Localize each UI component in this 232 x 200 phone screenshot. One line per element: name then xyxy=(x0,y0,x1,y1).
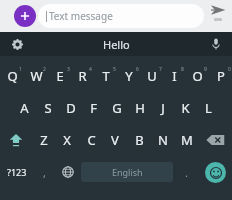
button[interactable]: L xyxy=(197,92,220,124)
button[interactable]: R xyxy=(71,60,94,92)
staticText: Z xyxy=(40,131,48,149)
staticText: C xyxy=(87,131,96,149)
staticText: M xyxy=(181,131,193,149)
button[interactable]: D xyxy=(59,92,82,124)
button[interactable]: T xyxy=(94,60,117,92)
button[interactable]: Hello xyxy=(0,32,232,56)
staticText: T xyxy=(102,67,110,85)
button[interactable]: Send SMS xyxy=(206,3,230,29)
staticText: W xyxy=(30,67,43,85)
staticText: 6 xyxy=(136,66,139,73)
button[interactable]: Z xyxy=(32,124,55,156)
staticText: Hello xyxy=(103,37,130,52)
staticText: H xyxy=(135,99,145,117)
button[interactable]: English xyxy=(81,162,173,182)
button[interactable]: U xyxy=(140,60,163,92)
staticText: A xyxy=(20,99,29,117)
button[interactable]: O xyxy=(186,60,209,92)
staticText: D xyxy=(66,99,76,117)
staticText: I xyxy=(172,67,177,85)
staticText: S xyxy=(44,99,52,117)
staticText: 8 xyxy=(181,66,184,73)
staticText: B xyxy=(135,131,144,149)
staticText: 0 xyxy=(228,66,231,73)
staticText: 9 xyxy=(204,66,207,73)
button[interactable]: Emoji xyxy=(205,162,226,183)
button[interactable]: P xyxy=(209,60,232,92)
button[interactable]: Settings xyxy=(6,32,28,56)
button[interactable]: Add attachment xyxy=(14,5,36,27)
button[interactable]: Backspace xyxy=(199,124,232,156)
button[interactable]: G xyxy=(105,92,128,124)
staticText: 3 xyxy=(67,66,70,73)
staticText: U xyxy=(147,67,157,85)
button[interactable]: K xyxy=(174,92,197,124)
button[interactable]: , xyxy=(33,156,56,188)
button[interactable]: H xyxy=(128,92,151,124)
staticText: . xyxy=(185,165,188,180)
button[interactable]: E xyxy=(48,60,71,92)
staticText: , xyxy=(43,165,46,180)
staticText: ?123 xyxy=(7,166,27,178)
button[interactable]: Shift xyxy=(0,124,32,156)
staticText: J xyxy=(161,99,165,117)
button[interactable]: . xyxy=(175,156,198,188)
staticText: G xyxy=(112,99,122,117)
button[interactable]: I xyxy=(163,60,186,92)
button[interactable]: Voice input xyxy=(206,32,226,56)
staticText: P xyxy=(217,67,225,85)
staticText: V xyxy=(111,131,119,149)
staticText: SMS xyxy=(214,17,223,22)
button[interactable]: S xyxy=(36,92,59,124)
button[interactable]: W xyxy=(24,60,48,92)
staticText: 2 xyxy=(43,66,46,73)
button[interactable]: F xyxy=(82,92,105,124)
staticText: K xyxy=(181,99,190,117)
button[interactable]: N xyxy=(151,124,175,156)
button[interactable]: Text message xyxy=(38,4,204,28)
staticText: Q xyxy=(7,67,18,85)
button[interactable]: Q xyxy=(0,60,24,92)
staticText: L xyxy=(205,99,212,117)
button[interactable]: C xyxy=(79,124,103,156)
button[interactable]: X xyxy=(55,124,79,156)
button[interactable]: Change language xyxy=(56,156,79,188)
staticText: English xyxy=(112,166,143,178)
staticText: 4 xyxy=(89,66,92,73)
button[interactable]: B xyxy=(127,124,151,156)
button[interactable]: M xyxy=(175,124,199,156)
button[interactable]: V xyxy=(103,124,127,156)
staticText: 5 xyxy=(113,66,116,73)
staticText: 1 xyxy=(19,66,22,73)
staticText: R xyxy=(78,67,87,85)
staticText: Text message xyxy=(49,9,113,23)
staticText: O xyxy=(192,67,203,85)
button[interactable]: Y xyxy=(117,60,140,92)
staticText: Y xyxy=(125,67,133,85)
button[interactable]: A xyxy=(12,92,36,124)
button[interactable]: J xyxy=(151,92,174,124)
staticText: 7 xyxy=(159,66,162,73)
staticText: E xyxy=(56,67,64,85)
staticText: N xyxy=(158,131,168,149)
staticText: X xyxy=(63,131,71,149)
staticText: F xyxy=(90,99,97,117)
button[interactable]: ?123 xyxy=(0,156,33,188)
